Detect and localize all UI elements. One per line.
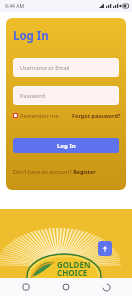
button[interactable]: Home: [52, 278, 80, 296]
staticText: Remember me: [20, 112, 59, 119]
staticText: Username or Email: [20, 64, 70, 71]
staticText: 9:44 AM: [5, 3, 24, 10]
button[interactable]: Recents: [12, 278, 40, 296]
button[interactable]: Don't have an account? Register: [13, 168, 96, 175]
button[interactable]: Scroll to top: [98, 241, 112, 256]
button[interactable]: Log In: [13, 138, 119, 153]
staticText: GOLDEN CHOICE: [57, 259, 91, 278]
button[interactable]: Forgot password?: [72, 112, 121, 119]
button[interactable]: Password: [14, 87, 118, 104]
button[interactable]: Username or Email: [14, 59, 118, 76]
staticText: Log In: [57, 142, 76, 150]
button[interactable]: Back: [92, 278, 120, 296]
staticText: Password: [20, 92, 45, 99]
button[interactable]: Remember me: [13, 112, 59, 119]
staticText: Log In: [13, 28, 49, 44]
